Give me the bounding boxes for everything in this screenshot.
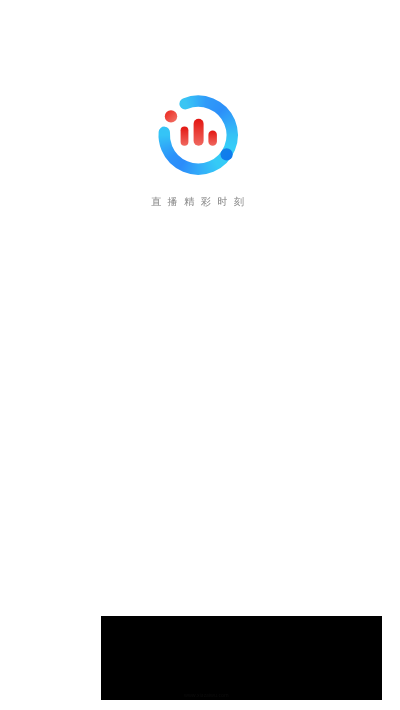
staticText: 直播精彩时刻: [148, 195, 247, 208]
button[interactable]: App logo: [156, 93, 241, 178]
